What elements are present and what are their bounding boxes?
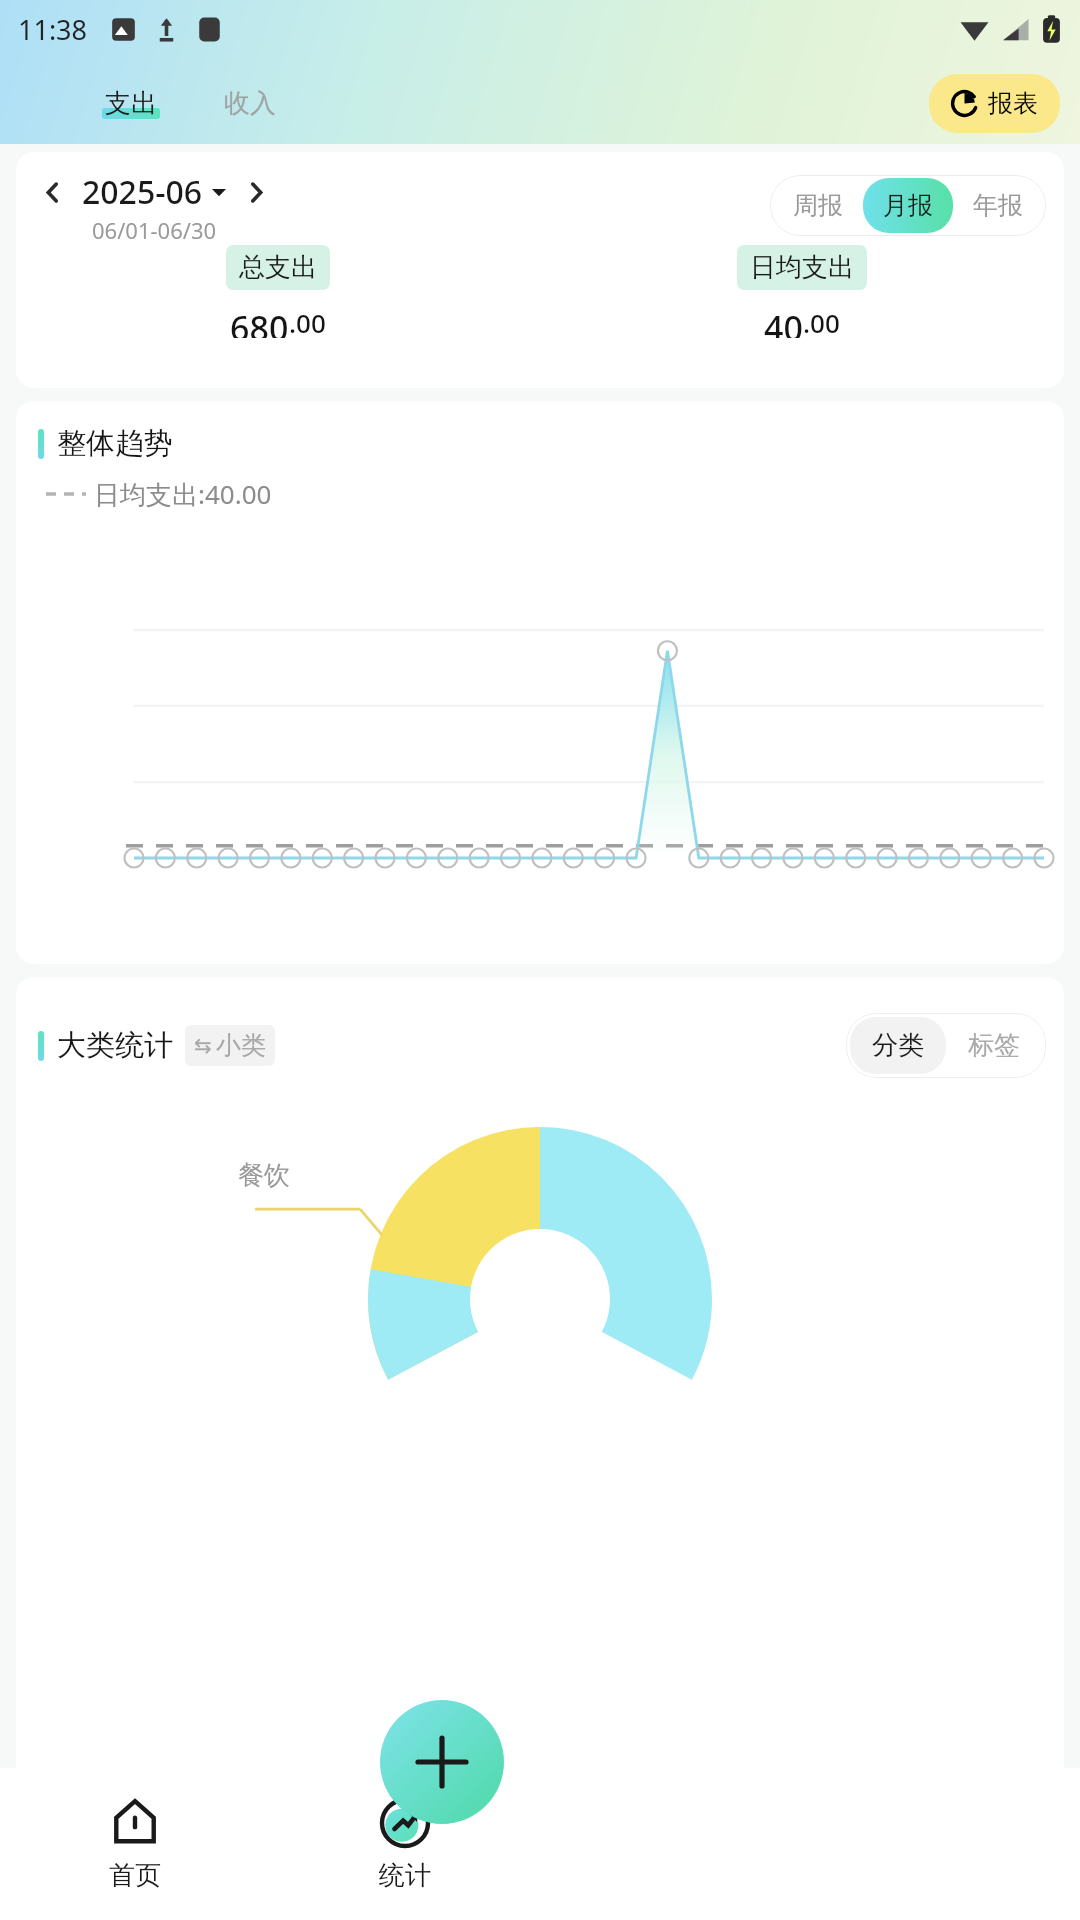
staticText: 日均支出:40.00 <box>94 476 272 512</box>
staticText: 月报 <box>883 190 933 221</box>
staticText: 06/01-06/30 <box>92 215 217 245</box>
staticText: 分类 <box>872 1029 924 1062</box>
button[interactable]: 年报 <box>953 178 1043 233</box>
staticText: 11:38 <box>18 11 88 48</box>
staticText: 年报 <box>973 190 1023 221</box>
staticText: .00 <box>803 305 840 338</box>
staticText: 日均支出 <box>750 251 854 284</box>
staticText: 首页 <box>109 1859 161 1892</box>
button[interactable]: 标签 <box>946 1017 1042 1074</box>
staticText: 小类 <box>216 1030 266 1061</box>
staticText: 680 <box>230 305 289 338</box>
button[interactable]: Add record <box>380 1700 504 1824</box>
button[interactable]: 月报 <box>863 178 953 233</box>
staticText: 收入 <box>224 87 276 120</box>
button[interactable]: Previous period <box>34 174 70 210</box>
staticText: 标签 <box>968 1029 1020 1062</box>
button[interactable]: 分类 <box>850 1017 946 1074</box>
button[interactable]: 2025-06 <box>82 170 226 214</box>
staticText: 大类统计 <box>57 1027 173 1064</box>
button[interactable]: Next period <box>238 174 274 210</box>
button[interactable]: 支出 <box>96 83 166 124</box>
staticText: 支出 <box>105 87 157 120</box>
button[interactable]: ⇆ <box>185 1025 275 1066</box>
staticText: 40 <box>764 305 803 338</box>
staticText: 餐饮 <box>238 1159 290 1192</box>
staticText: .00 <box>289 305 326 338</box>
staticText: ⇆ <box>194 1034 212 1058</box>
button[interactable]: 收入 <box>218 83 282 124</box>
button[interactable]: 首页 <box>0 1768 270 1920</box>
button[interactable]: 周报 <box>773 178 863 233</box>
staticText: 周报 <box>793 190 843 221</box>
staticText: 总支出 <box>239 251 317 284</box>
staticText: 统计 <box>379 1859 431 1892</box>
staticText: 报表 <box>988 88 1038 119</box>
staticText: 整体趋势 <box>57 425 173 462</box>
staticText: 2025-06 <box>82 170 203 214</box>
button[interactable]: 统计 <box>270 1768 540 1920</box>
button[interactable]: 报表 <box>929 74 1060 133</box>
